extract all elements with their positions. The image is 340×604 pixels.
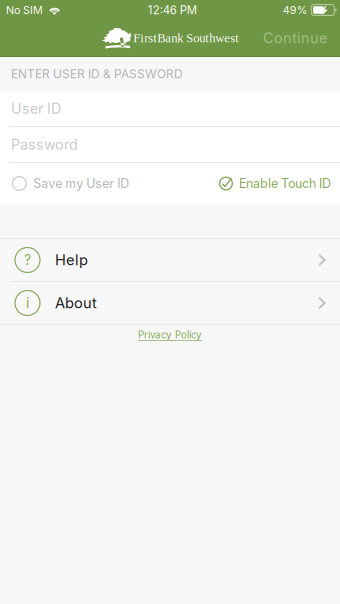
staticText: Password: [11, 136, 78, 153]
button[interactable]: Privacy Policy: [130, 325, 210, 345]
staticText: FirstBank Southwest: [133, 31, 239, 45]
staticText: ENTER USER ID & PASSWORD: [11, 67, 183, 81]
button[interactable]: Save my User ID: [12, 163, 129, 203]
button[interactable]: ?: [0, 239, 340, 281]
staticText: Enable Touch ID: [239, 176, 331, 191]
button[interactable]: Continue: [255, 21, 335, 55]
staticText: No SIM: [6, 3, 43, 17]
staticText: ?: [24, 251, 31, 268]
staticText: i: [26, 294, 29, 311]
staticText: 12:46 PM: [148, 3, 197, 17]
staticText: Save my User ID: [33, 176, 129, 191]
staticText: About: [55, 294, 97, 312]
staticText: User ID: [11, 100, 61, 117]
staticText: Continue: [263, 29, 327, 47]
button[interactable]: i: [0, 282, 340, 324]
button[interactable]: User ID: [0, 91, 340, 126]
button[interactable]: Enable Touch ID: [219, 163, 331, 203]
button[interactable]: Password: [0, 127, 340, 162]
staticText: Help: [55, 251, 88, 269]
staticText: 49%: [283, 3, 308, 17]
staticText: Privacy Policy: [138, 329, 202, 341]
